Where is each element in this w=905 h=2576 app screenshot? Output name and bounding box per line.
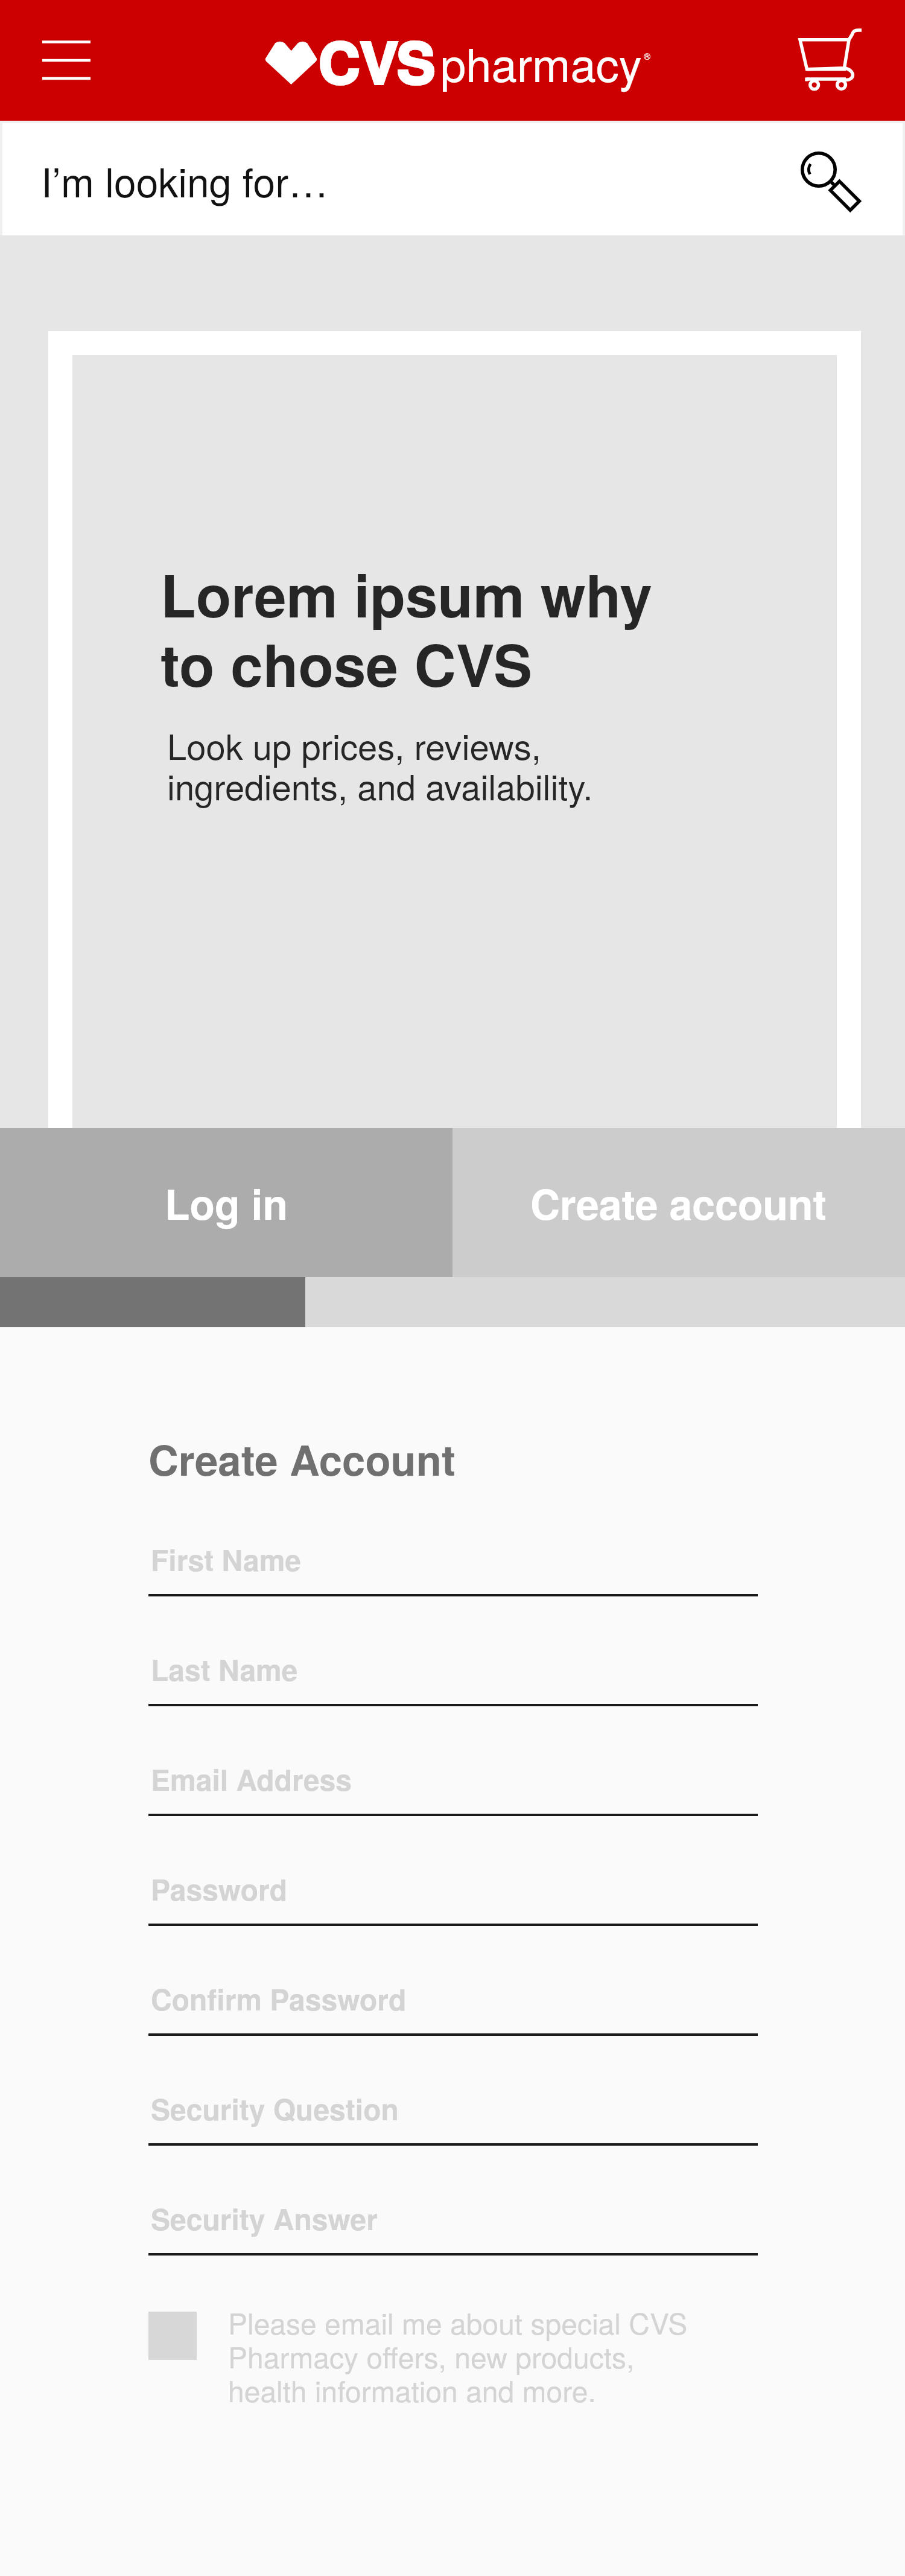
button[interactable]: Shopping cart	[782, 12, 880, 109]
staticText: Confirm Password	[151, 1978, 407, 2020]
staticText: I’m looking for…	[41, 151, 329, 209]
button[interactable]: Create account	[453, 1128, 905, 1277]
staticText: CVS	[319, 19, 436, 101]
button[interactable]: Email Address	[0, 1742, 905, 1852]
staticText: Log in	[165, 1173, 288, 1232]
button[interactable]: Search	[789, 137, 890, 228]
staticText: Last Name	[151, 1648, 298, 1690]
staticText: Security Answer	[151, 2198, 378, 2239]
staticText: Look up prices, reviews, ingredients, an…	[167, 719, 593, 810]
button[interactable]: Log in	[0, 1128, 453, 1277]
button[interactable]: Password	[0, 1852, 905, 1962]
staticText: Password	[151, 1868, 288, 1910]
button[interactable]: Please email me about special CVS Pharma…	[148, 2312, 691, 2421]
button[interactable]: Confirm Password	[0, 1962, 905, 2072]
staticText: ®	[644, 49, 651, 62]
button[interactable]: Open navigation menu	[17, 16, 116, 105]
button[interactable]: Security Answer	[0, 2182, 905, 2292]
button[interactable]: Lorem ipsum why to chose CVS	[48, 331, 861, 1133]
staticText: Security Question	[151, 2088, 399, 2129]
staticText: CVS	[319, 19, 436, 101]
staticText: Please email me about special CVS Pharma…	[228, 2301, 688, 2411]
staticText: Create account	[530, 1173, 827, 1232]
button[interactable]: Last Name	[0, 1633, 905, 1742]
button[interactable]: Security Question	[0, 2072, 905, 2182]
staticText: Lorem ipsum why to chose CVS	[160, 552, 652, 705]
button[interactable]: I’m looking for…	[2, 123, 903, 235]
staticText: Create Account	[148, 1429, 456, 1488]
staticText: pharmacy	[440, 30, 642, 95]
staticText: First Name	[151, 1538, 302, 1580]
staticText: Email Address	[151, 1758, 352, 1800]
button[interactable]: First Name	[0, 1523, 905, 1633]
